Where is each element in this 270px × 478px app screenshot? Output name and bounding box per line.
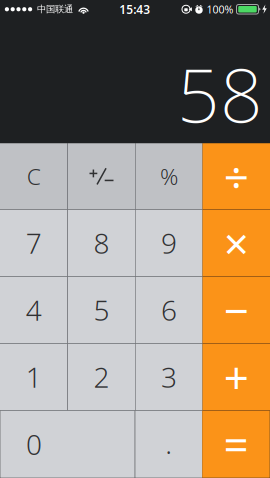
staticText: 15:43 [119,1,150,17]
staticText: 6 [161,291,177,329]
staticText: − [224,281,249,339]
button[interactable]: 1 [0,344,67,410]
button[interactable]: C [0,143,67,209]
staticText: 8 [93,224,109,262]
staticText: 7 [26,224,42,262]
button[interactable]: 3 [135,344,202,410]
button[interactable]: 0 [0,411,135,478]
button[interactable]: = [202,411,270,478]
staticText: 5 [93,291,109,329]
button[interactable]: . [135,411,202,478]
button[interactable]: 2 [68,344,135,410]
button[interactable]: × [202,210,270,276]
staticText: × [224,214,249,272]
button[interactable]: 7 [0,210,67,276]
button[interactable]: 8 [68,210,135,276]
staticText: ÷ [224,147,249,205]
staticText: 0 [26,426,42,463]
button[interactable]: Plus minus [68,143,135,209]
staticText: 100% [206,2,233,16]
staticText: 1 [26,358,42,396]
staticText: = [223,415,248,473]
staticText: 3 [161,358,177,396]
button[interactable]: ÷ [202,143,270,209]
button[interactable]: − [202,277,270,343]
button[interactable]: % [135,143,202,209]
staticText: C [27,161,41,191]
staticText: 2 [93,358,109,396]
button[interactable]: 4 [0,277,67,343]
button[interactable]: 5 [68,277,135,343]
staticText: 58 [177,44,263,143]
staticText: 中国联通 [37,3,73,15]
staticText: + [224,348,249,406]
button[interactable]: + [202,344,270,410]
button[interactable]: 9 [135,210,202,276]
staticText: 9 [161,224,177,262]
staticText: 4 [26,291,42,329]
staticText: . [165,425,172,462]
button[interactable]: 6 [135,277,202,343]
staticText: % [160,161,178,191]
